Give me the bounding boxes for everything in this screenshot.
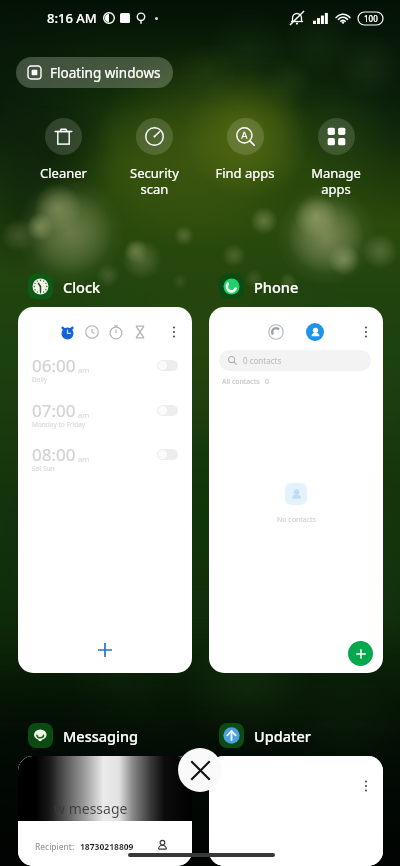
staticText: 06:00 <box>32 354 76 377</box>
button[interactable]: Alarm <box>60 325 75 340</box>
button[interactable]: Cleaner <box>18 118 108 182</box>
button[interactable]: Recents <box>209 307 383 673</box>
button[interactable]: World clock <box>85 325 99 339</box>
button[interactable]: More options <box>358 778 374 794</box>
button[interactable]: Contacts <box>306 323 324 341</box>
button[interactable]: Floating windows <box>16 57 173 88</box>
button[interactable]: 06:00 <box>18 354 192 386</box>
staticText: w message <box>54 799 128 818</box>
staticText: Messaging <box>63 726 139 746</box>
button[interactable]: Toggle alarm <box>157 449 178 460</box>
staticText: Floating windows <box>50 64 161 82</box>
staticText: Clock <box>63 277 101 297</box>
staticText: am <box>78 365 90 375</box>
staticText: am <box>78 454 90 464</box>
staticText: am <box>78 410 90 420</box>
staticText: 0 contacts <box>243 355 282 366</box>
staticText: Sat Sun <box>32 464 55 473</box>
button[interactable]: Timer <box>133 325 147 339</box>
button[interactable]: Toggle alarm <box>157 360 178 371</box>
staticText: 100 <box>364 13 378 24</box>
staticText: Find apps <box>215 164 275 182</box>
button[interactable]: More options <box>166 324 182 340</box>
staticText: 07:00 <box>32 399 76 422</box>
button[interactable]: Close all <box>178 748 222 792</box>
button[interactable]: 07:00 <box>18 399 192 431</box>
staticText: 18730218809 <box>80 841 134 853</box>
staticText: Cleaner <box>40 164 87 182</box>
button[interactable]: Pick contact <box>156 839 169 852</box>
staticText: Phone <box>254 277 299 297</box>
staticText: Recipient: <box>35 841 75 853</box>
button[interactable]: Toggle alarm <box>157 405 178 416</box>
staticText: Daily <box>32 375 48 384</box>
button[interactable]: More options <box>358 324 374 340</box>
button[interactable]: Add alarm <box>94 639 116 661</box>
staticText: 0 <box>265 377 270 387</box>
button[interactable]: w message <box>18 756 192 866</box>
staticText: No contacts <box>277 515 316 525</box>
staticText: Manage apps <box>311 164 361 197</box>
button[interactable]: Add contact <box>348 641 373 666</box>
button[interactable]: Recents <box>268 324 284 340</box>
button[interactable]: 0 contacts <box>219 350 371 371</box>
button[interactable]: Security scan <box>109 118 199 197</box>
button[interactable]: 08:00 <box>18 443 192 475</box>
staticText: 8:16 AM <box>47 9 97 27</box>
staticText: Monday to Friday <box>32 420 86 429</box>
button[interactable]: Stopwatch <box>109 325 123 339</box>
staticText: Security scan <box>130 164 179 197</box>
button[interactable]: Find apps <box>200 118 290 182</box>
staticText: All contacts <box>222 377 260 387</box>
button[interactable]: Alarm <box>18 307 192 673</box>
button[interactable]: More options <box>209 756 383 866</box>
staticText: Updater <box>254 726 311 746</box>
button[interactable]: Manage apps <box>291 118 381 197</box>
staticText: 08:00 <box>32 443 76 466</box>
